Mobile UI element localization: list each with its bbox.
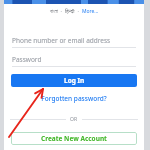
button[interactable]: বাংলা: [50, 9, 58, 14]
button[interactable]: More...: [82, 8, 99, 15]
staticText: ·: [58, 8, 65, 15]
staticText: Create New Account: [41, 134, 107, 143]
staticText: Forgotten password?: [41, 94, 107, 103]
staticText: Password: [12, 55, 42, 64]
staticText: বাংলা: [50, 9, 58, 14]
staticText: हिन्दी: [65, 8, 75, 15]
staticText: Log In: [64, 76, 85, 85]
button[interactable]: हिन्दी: [65, 8, 75, 15]
button[interactable]: Log In: [11, 74, 137, 87]
staticText: More...: [82, 8, 99, 15]
button[interactable]: Phone number or email address: [12, 32, 136, 48]
staticText: ·: [75, 8, 82, 15]
button[interactable]: Create New Account: [11, 132, 137, 145]
button[interactable]: Forgotten password?: [4, 93, 144, 104]
staticText: Phone number or email address: [12, 36, 111, 45]
staticText: OR: [70, 116, 78, 123]
button[interactable]: Password: [12, 51, 136, 67]
other: Annotation arrow: [0, 0, 150, 150]
